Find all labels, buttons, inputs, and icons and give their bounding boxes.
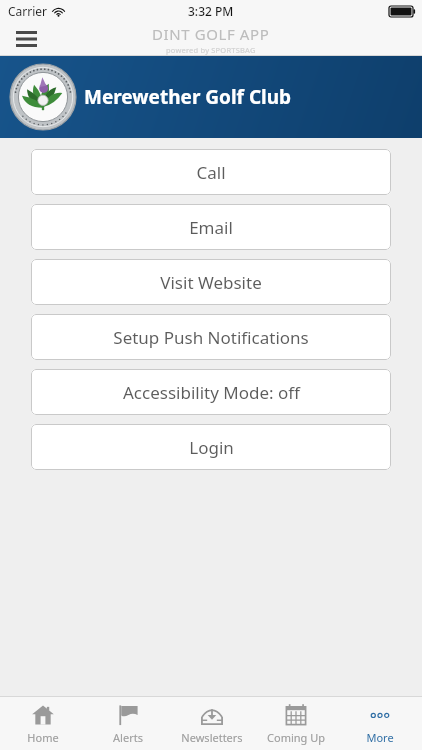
staticText: Visit Website xyxy=(160,271,262,294)
staticText: Coming Up xyxy=(267,730,325,745)
staticText: Carrier xyxy=(8,3,48,19)
button[interactable]: Login xyxy=(31,424,391,470)
staticText: Newsletters xyxy=(181,730,243,745)
button[interactable]: Home xyxy=(0,697,85,750)
staticText: Email xyxy=(189,216,233,239)
button[interactable]: Alerts xyxy=(85,697,170,750)
staticText: Alerts xyxy=(113,730,143,745)
button[interactable]: Coming Up xyxy=(254,697,338,750)
staticText: Login xyxy=(189,436,234,459)
staticText: 3:32 PM xyxy=(188,3,234,19)
button[interactable]: Visit Website xyxy=(31,259,391,305)
button[interactable]: More xyxy=(338,697,422,750)
staticText: Merewether Golf Club xyxy=(84,84,292,110)
staticText: DINT GOLF APP xyxy=(152,24,270,44)
button[interactable]: Call xyxy=(31,149,391,195)
button[interactable]: Accessibility Mode: off xyxy=(31,369,391,415)
staticText: powered by SPORTSBAG xyxy=(166,45,256,55)
staticText: Home xyxy=(27,730,59,745)
staticText: Call xyxy=(196,161,226,184)
staticText: Setup Push Notifications xyxy=(113,326,309,349)
button[interactable]: Setup Push Notifications xyxy=(31,314,391,360)
button[interactable]: Newsletters xyxy=(170,697,254,750)
staticText: More xyxy=(366,730,394,745)
staticText: Accessibility Mode: off xyxy=(123,381,300,404)
button[interactable]: Email xyxy=(31,204,391,250)
button[interactable]: Menu xyxy=(8,22,44,56)
